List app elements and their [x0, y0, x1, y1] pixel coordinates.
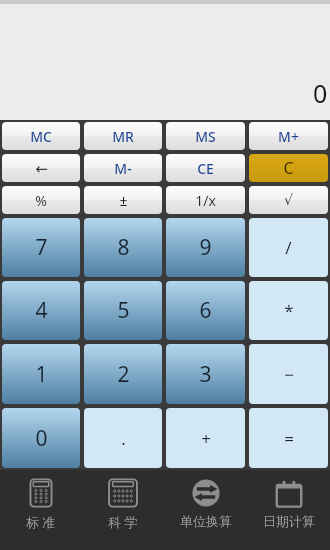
staticText: M- — [114, 159, 132, 178]
button[interactable]: MC — [2, 122, 80, 150]
staticText: 5 — [117, 296, 130, 325]
staticText: 单位换算 — [180, 513, 232, 529]
staticText: 科 学 — [108, 513, 138, 531]
staticText: * — [284, 299, 294, 322]
staticText: 6 — [199, 296, 212, 325]
button[interactable]: ± — [84, 186, 162, 214]
staticText: 1/x — [195, 191, 216, 210]
staticText: MC — [30, 127, 52, 146]
button[interactable]: Unit conversion — [164, 470, 247, 529]
staticText: √ — [284, 192, 293, 208]
button[interactable]: . — [84, 408, 162, 468]
staticText: − — [284, 363, 294, 386]
button[interactable]: 9 — [166, 218, 245, 277]
staticText: ± — [119, 191, 128, 210]
button[interactable]: MR — [84, 122, 162, 150]
button[interactable]: Standard calculator — [0, 470, 82, 531]
button[interactable]: Date calculation — [247, 470, 330, 529]
button[interactable]: % — [2, 186, 80, 214]
staticText: 1 — [35, 360, 48, 389]
staticText: 日期计算 — [263, 513, 315, 529]
staticText: CE — [197, 159, 214, 178]
staticText: 4 — [35, 296, 48, 325]
button[interactable]: * — [249, 281, 328, 340]
staticText: 7 — [35, 233, 48, 262]
staticText: 0 — [35, 424, 48, 453]
button[interactable]: 4 — [2, 281, 80, 340]
button[interactable]: M+ — [249, 122, 328, 150]
button[interactable]: − — [249, 344, 328, 404]
button[interactable]: = — [249, 408, 328, 468]
staticText: + — [201, 427, 211, 450]
button[interactable]: 2 — [84, 344, 162, 404]
button[interactable]: √ — [249, 186, 328, 214]
button[interactable]: 7 — [2, 218, 80, 277]
button[interactable]: Scientific calculator — [82, 470, 164, 531]
staticText: % — [35, 191, 47, 210]
staticText: ← — [35, 160, 48, 177]
staticText: 标 准 — [26, 513, 56, 531]
staticText: = — [284, 427, 294, 450]
button[interactable]: ← — [2, 154, 80, 182]
button[interactable]: 6 — [166, 281, 245, 340]
button[interactable]: 0 — [2, 408, 80, 468]
staticText: 0 — [313, 76, 328, 110]
button[interactable]: / — [249, 218, 328, 277]
button[interactable]: 3 — [166, 344, 245, 404]
staticText: C — [283, 157, 294, 179]
button[interactable]: 8 — [84, 218, 162, 277]
button[interactable]: 1/x — [166, 186, 245, 214]
staticText: 9 — [199, 233, 212, 262]
staticText: 3 — [199, 360, 212, 389]
staticText: MS — [195, 127, 216, 146]
button[interactable]: M- — [84, 154, 162, 182]
staticText: . — [121, 427, 126, 450]
staticText: MR — [112, 127, 134, 146]
staticText: 2 — [117, 360, 130, 389]
button[interactable]: 5 — [84, 281, 162, 340]
staticText: M+ — [278, 127, 299, 146]
button[interactable]: CE — [166, 154, 245, 182]
button[interactable]: + — [166, 408, 245, 468]
button[interactable]: MS — [166, 122, 245, 150]
button[interactable]: C — [249, 154, 328, 182]
staticText: 8 — [117, 233, 130, 262]
staticText: / — [285, 236, 292, 259]
button[interactable]: 1 — [2, 344, 80, 404]
